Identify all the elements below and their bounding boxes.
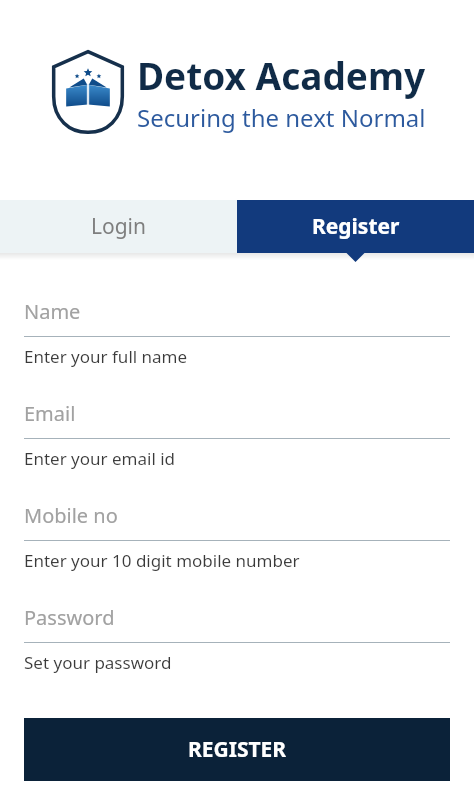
button[interactable]: Login — [0, 200, 237, 253]
staticText: Enter your email id — [24, 447, 176, 470]
staticText: Detox Academy — [137, 50, 426, 100]
staticText: Login — [91, 212, 147, 241]
button[interactable]: Name — [0, 298, 474, 368]
button[interactable]: Email — [0, 400, 474, 470]
staticText: Name — [24, 298, 81, 325]
staticText: Set your password — [24, 651, 172, 674]
button[interactable]: Register — [237, 200, 474, 253]
staticText: Password — [24, 604, 115, 631]
staticText: REGISTER — [188, 735, 287, 764]
staticText: Register — [312, 212, 400, 241]
staticText: Enter your 10 digit mobile number — [24, 549, 300, 572]
staticText: Enter your full name — [24, 345, 188, 368]
staticText: Securing the next Normal — [137, 101, 426, 134]
staticText: Email — [24, 400, 76, 427]
staticText: Mobile no — [24, 502, 118, 529]
button[interactable]: Password — [0, 604, 474, 674]
button[interactable]: Mobile no — [0, 502, 474, 572]
button[interactable]: Register — [24, 718, 450, 781]
